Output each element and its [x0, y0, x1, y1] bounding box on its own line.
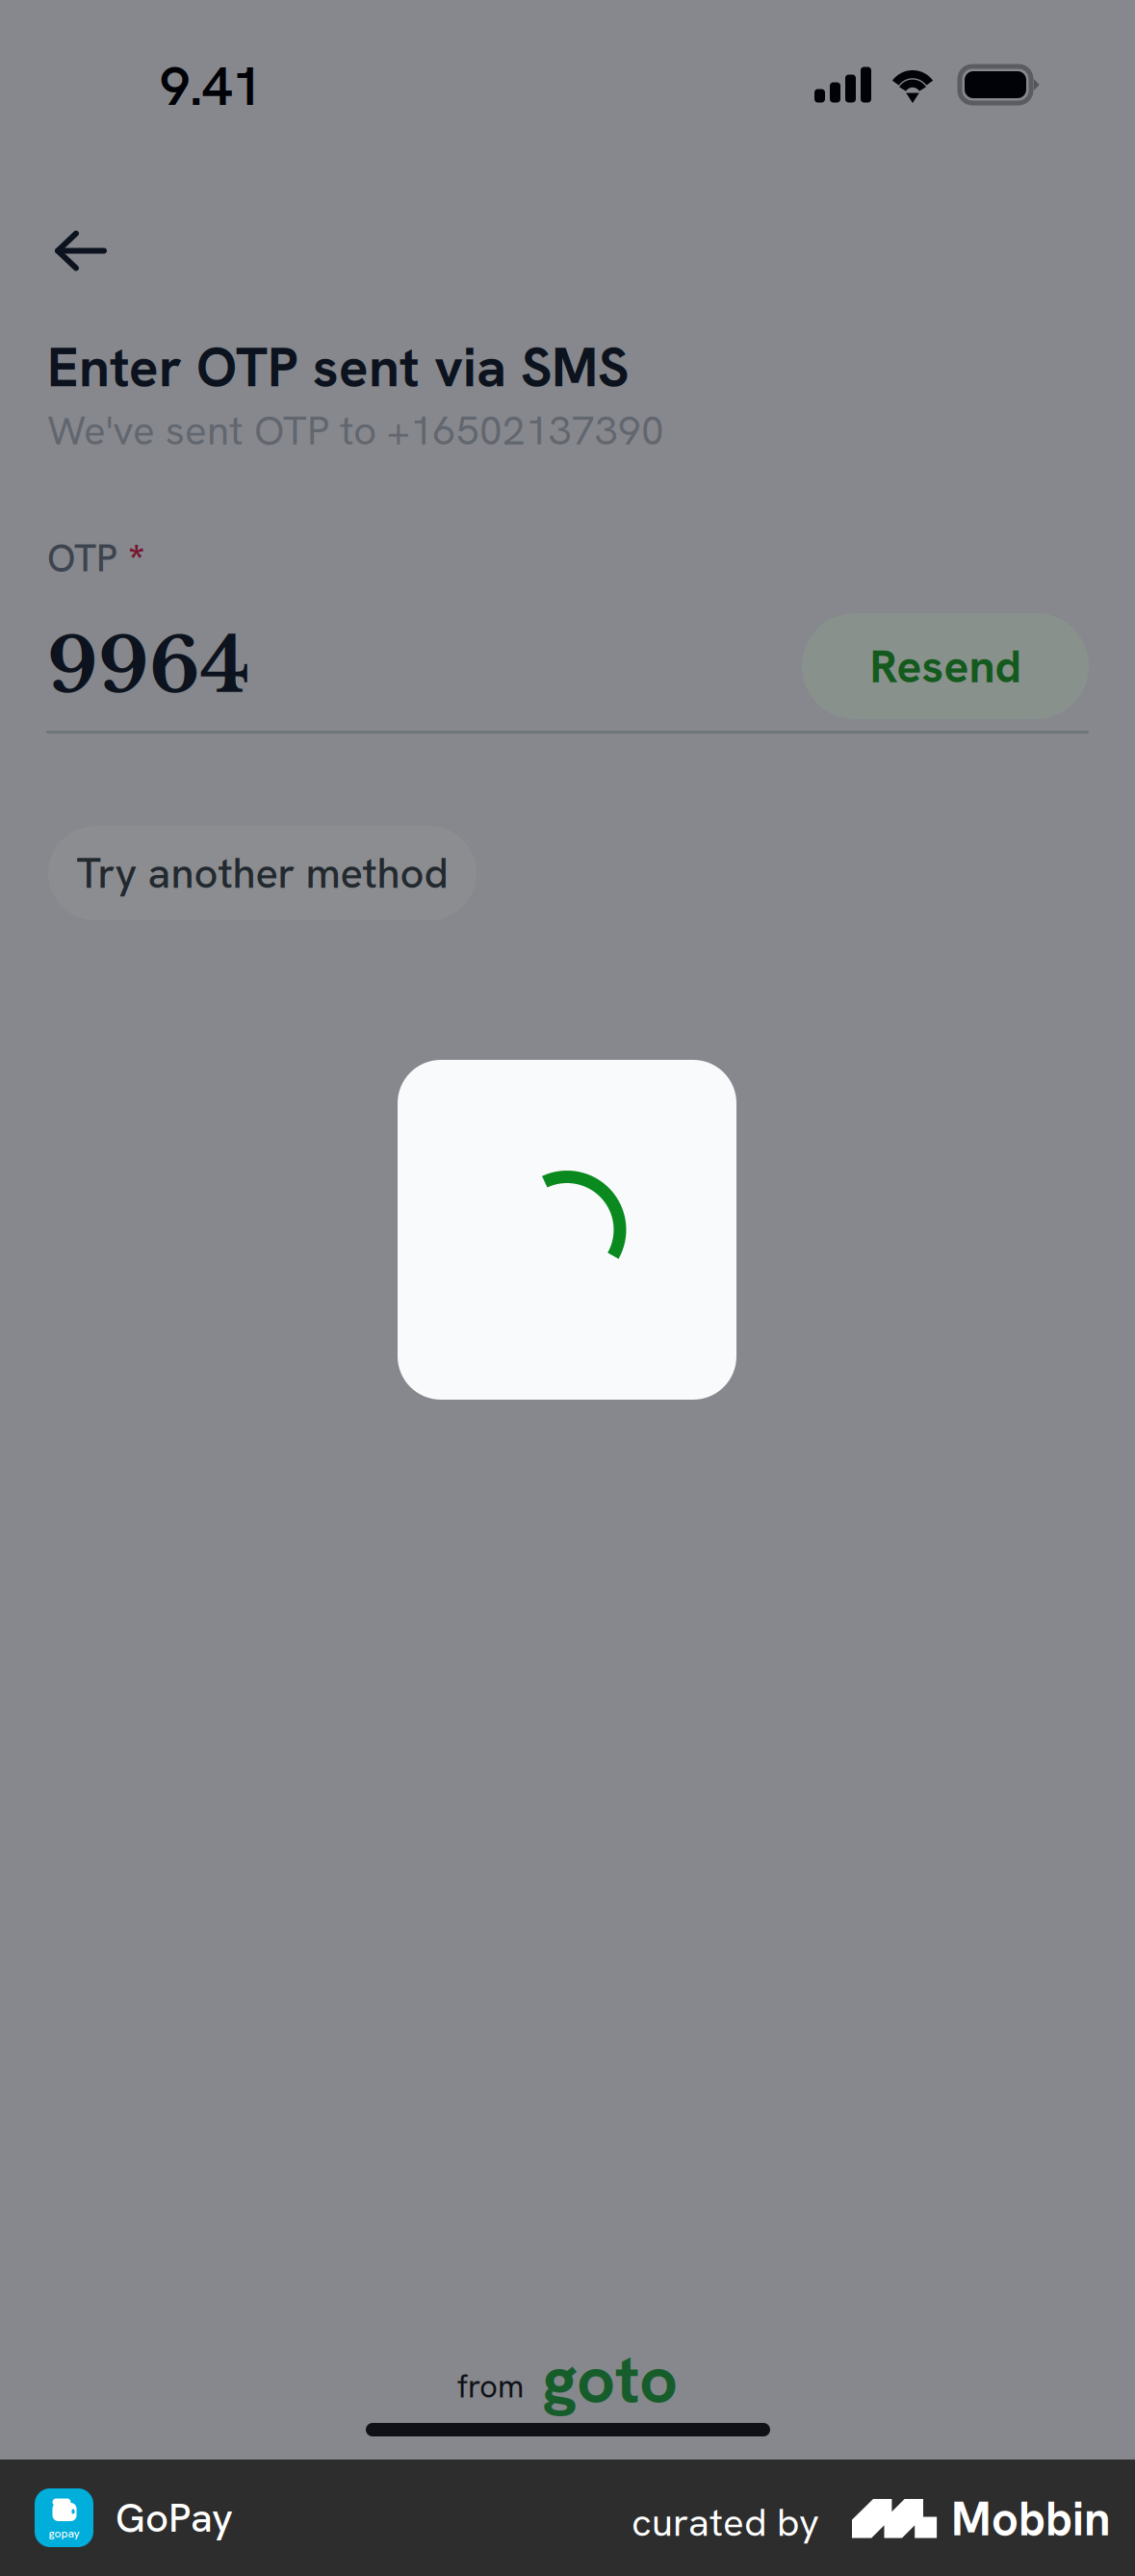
- staticText: goto: [542, 2335, 678, 2423]
- staticText: *: [128, 532, 145, 587]
- button[interactable]: Resend: [802, 613, 1089, 719]
- staticText: gopay: [49, 2526, 79, 2541]
- staticText: Try another method: [77, 846, 448, 900]
- staticText: 9.41: [160, 51, 262, 121]
- staticText: OTP: [47, 533, 117, 583]
- staticText: from: [457, 2366, 524, 2407]
- button[interactable]: Try another method: [48, 826, 477, 920]
- staticText: curated by: [632, 2497, 819, 2548]
- staticText: GoPay: [116, 2491, 233, 2544]
- staticText: Resend: [870, 636, 1021, 696]
- staticText: We've sent OTP to +16502137390: [47, 404, 664, 457]
- button[interactable]: Back: [0, 205, 162, 296]
- staticText: 9964: [47, 619, 250, 712]
- staticText: Enter OTP sent via SMS: [47, 332, 629, 403]
- staticText: Mobbin: [951, 2488, 1110, 2549]
